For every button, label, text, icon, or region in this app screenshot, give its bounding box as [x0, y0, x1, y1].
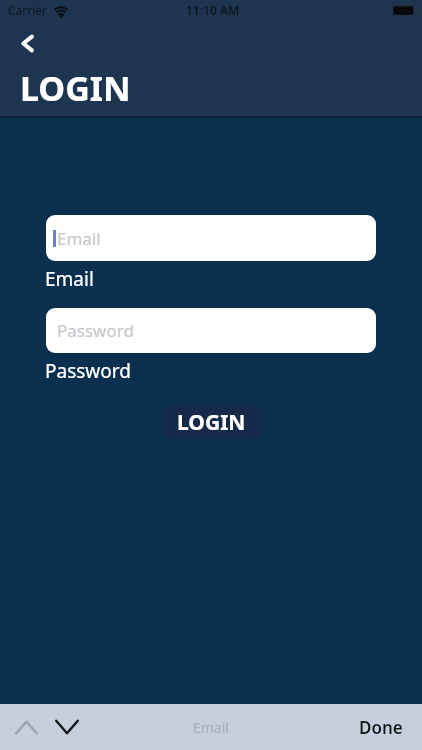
staticText: Email: [45, 266, 94, 292]
staticText: Done: [359, 716, 403, 739]
staticText: Email: [57, 227, 101, 250]
staticText: LOGIN: [20, 65, 131, 111]
button[interactable]: [14, 715, 38, 739]
staticText: Email: [193, 718, 229, 737]
button[interactable]: Password: [46, 308, 376, 353]
button[interactable]: [55, 715, 79, 739]
staticText: Password: [57, 319, 134, 342]
staticText: LOGIN: [177, 408, 246, 437]
staticText: Carrier: [8, 2, 48, 18]
button[interactable]: Done: [359, 716, 422, 739]
button[interactable]: LOGIN: [163, 405, 260, 439]
button[interactable]: Email: [46, 215, 376, 261]
staticText: Password: [45, 358, 131, 384]
button[interactable]: [13, 29, 41, 57]
staticText: 11:10 AM: [186, 2, 240, 18]
